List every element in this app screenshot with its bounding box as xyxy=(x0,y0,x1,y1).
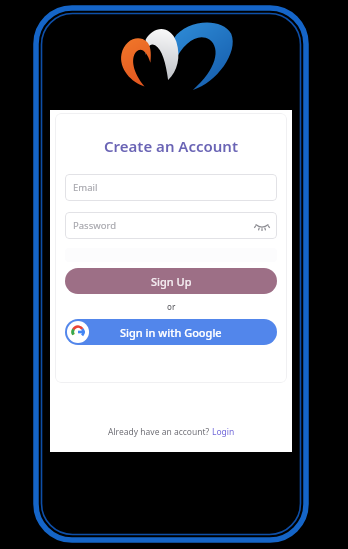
button[interactable]: Already have an account? xyxy=(108,426,235,438)
button[interactable]: Password xyxy=(65,212,277,239)
staticText: or xyxy=(167,301,176,312)
staticText: Login xyxy=(212,426,235,438)
staticText: Email xyxy=(73,181,98,194)
button[interactable]: Show password xyxy=(254,220,270,232)
staticText: Already have an account? xyxy=(108,426,212,438)
staticText: Sign Up xyxy=(151,274,192,289)
button[interactable]: Email xyxy=(65,174,277,201)
staticText: Sign in with Google xyxy=(120,325,222,340)
button[interactable]: Sign Up xyxy=(65,268,277,294)
staticText: Password xyxy=(73,219,116,232)
button[interactable]: Sign in with Google xyxy=(65,319,277,345)
staticText: Create an Account xyxy=(104,136,238,156)
